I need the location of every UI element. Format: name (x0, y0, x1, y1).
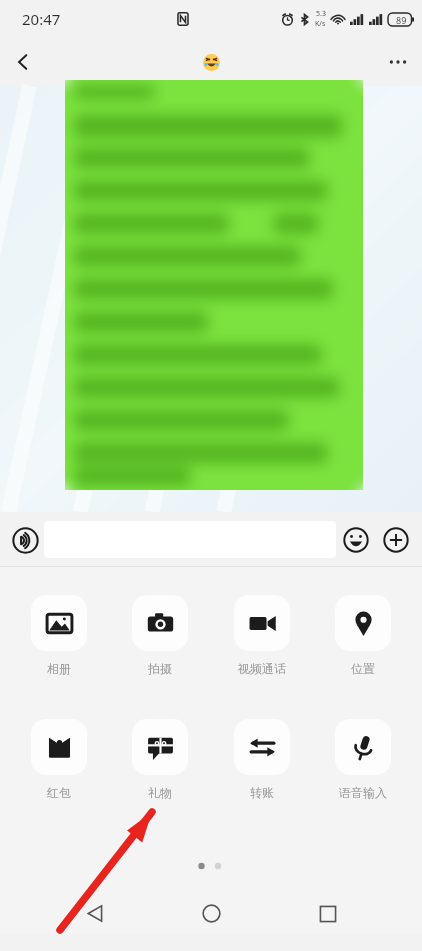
staticText: 相册 (47, 661, 71, 676)
button[interactable]: More functions (376, 520, 416, 560)
button[interactable]: Recent apps (306, 893, 350, 934)
staticText: 拍摄 (148, 661, 172, 676)
button[interactable]: 相册 (17, 595, 101, 676)
button[interactable]: Back (73, 893, 117, 934)
staticText: 转账 (250, 785, 274, 800)
button[interactable]: 红包 (17, 719, 101, 800)
staticText: 5.3 (316, 9, 326, 19)
button[interactable]: 位置 (321, 595, 405, 676)
staticText: K/s (315, 19, 326, 29)
button[interactable]: 转账 (220, 719, 304, 800)
button[interactable]: 拍摄 (118, 595, 202, 676)
button[interactable]: Emoji (336, 520, 376, 560)
staticText: 红包 (47, 785, 71, 800)
staticText: 位置 (351, 661, 375, 676)
staticText: 礼物 (148, 785, 172, 800)
button[interactable]: 礼物 (118, 719, 202, 800)
button[interactable]: Back (0, 39, 46, 85)
button[interactable]: 语音输入 (321, 719, 405, 800)
staticText: 89 (396, 14, 407, 26)
button[interactable] (65, 80, 363, 490)
button[interactable]: Home (189, 893, 233, 934)
button[interactable]: More options (374, 38, 422, 86)
button[interactable]: Voice message (6, 521, 44, 559)
button[interactable]: 视频通话 (220, 595, 304, 676)
staticText: 20:47 (22, 9, 61, 29)
staticText: 视频通话 (238, 661, 286, 676)
staticText: 语音输入 (339, 785, 387, 800)
